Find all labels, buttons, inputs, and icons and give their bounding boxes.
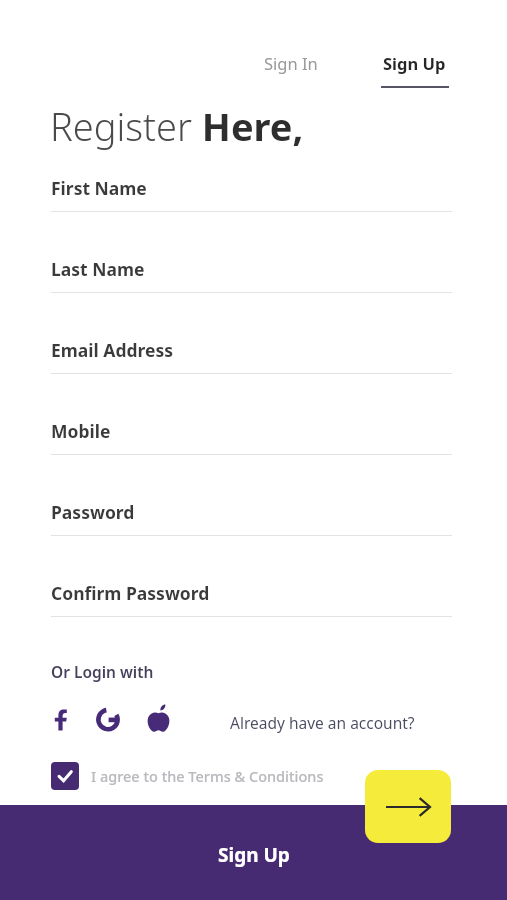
button[interactable]: I agree to the Terms & Conditions <box>51 762 324 790</box>
button[interactable]: Already have an account? <box>228 710 417 735</box>
staticText: Register Here, <box>50 100 304 152</box>
staticText: Last Name <box>51 257 145 281</box>
button[interactable]: Sign Up <box>0 805 507 900</box>
button[interactable]: First Name <box>51 176 452 212</box>
staticText: Already have an account? <box>230 712 415 733</box>
staticText: Confirm Password <box>51 581 210 605</box>
button[interactable]: Continue <box>365 770 451 843</box>
staticText: Sign Up <box>383 52 446 74</box>
staticText: Sign Up <box>218 842 290 868</box>
button[interactable]: Sign Up <box>379 48 450 88</box>
button[interactable]: Sign up with Facebook <box>47 704 77 734</box>
button[interactable]: Sign In <box>258 48 324 78</box>
staticText: I agree to the Terms & Conditions <box>91 766 324 786</box>
button[interactable]: Confirm Password <box>51 581 452 617</box>
button[interactable]: Password <box>51 500 452 536</box>
staticText: Email Address <box>51 338 174 362</box>
button[interactable]: Sign up with Google <box>93 704 123 734</box>
staticText: Password <box>51 500 135 524</box>
button[interactable]: Email Address <box>51 338 452 374</box>
button[interactable]: Sign up with Apple <box>143 703 174 734</box>
staticText: First Name <box>51 176 147 200</box>
staticText: Or Login with <box>51 661 154 682</box>
button[interactable]: Last Name <box>51 257 452 293</box>
button[interactable]: Mobile <box>51 419 452 455</box>
staticText: Sign In <box>264 52 318 74</box>
staticText: Mobile <box>51 419 111 443</box>
